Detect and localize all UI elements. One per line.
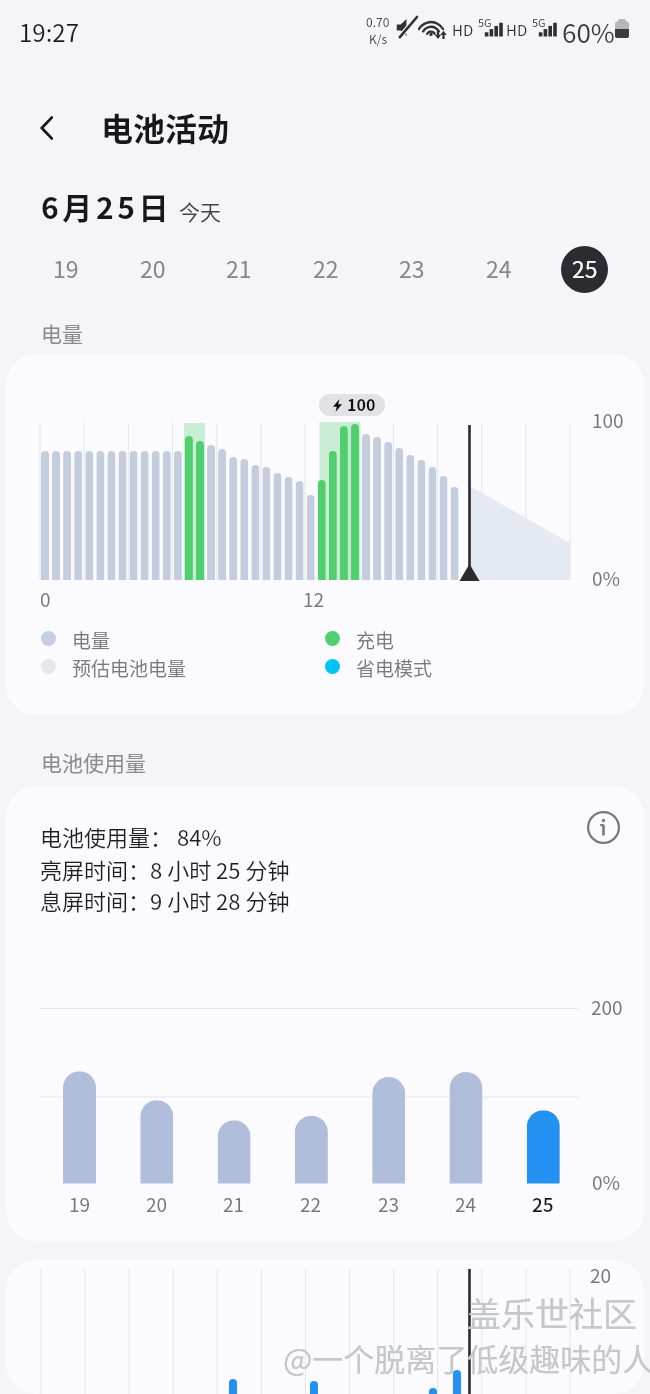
staticText: 21	[226, 251, 252, 284]
button[interactable]: Back	[24, 105, 70, 151]
staticText: 12	[303, 585, 325, 613]
staticText: 6月25日	[41, 184, 173, 227]
staticText: 5G	[478, 14, 492, 30]
staticText: 电池使用量： 84%	[40, 820, 222, 852]
staticText: 60%	[562, 13, 615, 51]
staticText: 电量	[72, 626, 111, 654]
button[interactable]: 20	[129, 246, 176, 293]
staticText: 20	[146, 1190, 168, 1218]
button[interactable]: 24	[475, 246, 522, 293]
button[interactable]: 25	[561, 246, 608, 293]
button[interactable]: 21	[215, 246, 262, 293]
staticText: K/s	[369, 30, 388, 47]
staticText: 今天	[179, 196, 221, 226]
staticText: 亮屏时间：8 小时 25 分钟	[40, 853, 290, 885]
staticText: 0%	[592, 564, 621, 592]
staticText: 200	[591, 993, 623, 1021]
staticText: 0	[40, 585, 51, 613]
staticText: 25	[572, 251, 598, 284]
staticText: 预估电池电量	[72, 654, 187, 682]
staticText: 息屏时间：9 小时 28 分钟	[40, 884, 290, 916]
staticText: HD	[452, 19, 474, 41]
staticText: 电量	[41, 318, 83, 348]
staticText: 100	[592, 406, 624, 434]
staticText: 充电	[356, 626, 395, 654]
staticText: 0%	[592, 1168, 621, 1196]
staticText: 24	[486, 251, 512, 284]
staticText: 电池活动	[101, 104, 230, 150]
staticText: 20	[140, 251, 166, 284]
staticText: 省电模式	[356, 654, 433, 682]
staticText: HD	[506, 19, 528, 41]
staticText: 电池使用量	[41, 747, 146, 777]
staticText: 19	[53, 251, 79, 284]
staticText: 21	[223, 1190, 245, 1218]
staticText: 25	[532, 1190, 554, 1218]
staticText: 23	[378, 1190, 400, 1218]
staticText: 100	[347, 394, 376, 414]
staticText: 23	[399, 251, 425, 284]
staticText: 19	[69, 1190, 91, 1218]
button[interactable]: Info	[581, 805, 625, 849]
staticText: 22	[300, 1190, 322, 1218]
staticText: 5G	[532, 14, 546, 30]
staticText: 22	[313, 251, 339, 284]
button[interactable]: 22	[302, 246, 349, 293]
staticText: @一个脱离了低级趣味的人	[283, 1335, 650, 1380]
staticText: 盖乐世社区	[467, 1288, 637, 1337]
staticText: 0.70	[366, 13, 390, 30]
button[interactable]: 19	[42, 246, 89, 293]
button[interactable]: 23	[388, 246, 435, 293]
staticText: 20	[590, 1261, 612, 1289]
staticText: 24	[455, 1190, 477, 1218]
staticText: 19:27	[19, 14, 79, 49]
